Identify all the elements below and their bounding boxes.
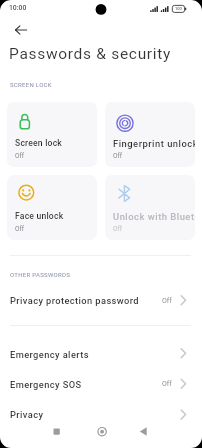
button[interactable]: Emergency SOS bbox=[0, 370, 202, 398]
button[interactable] bbox=[8, 20, 30, 38]
staticText: 100 bbox=[175, 6, 182, 11]
button[interactable] bbox=[130, 421, 160, 443]
button[interactable]: Fingerprint unlock bbox=[105, 102, 195, 167]
staticText: Passwords & security bbox=[9, 45, 172, 63]
staticText: Face unlock bbox=[15, 211, 97, 221]
button[interactable]: Emergency alerts bbox=[0, 340, 202, 368]
button[interactable]: Face unlock bbox=[7, 175, 97, 240]
button[interactable]: Unlock with Bluetooth device bbox=[105, 175, 195, 240]
staticText: Off bbox=[162, 297, 172, 305]
button[interactable]: Privacy bbox=[0, 400, 202, 429]
staticText: 10:00 bbox=[9, 4, 27, 12]
button[interactable] bbox=[87, 421, 117, 443]
button[interactable]: Privacy protection password bbox=[0, 288, 202, 313]
staticText: Fingerprint unlock bbox=[113, 138, 195, 149]
staticText: Off bbox=[113, 152, 122, 160]
staticText: Emergency SOS bbox=[10, 379, 82, 390]
staticText: OTHER PASSWORDS bbox=[10, 271, 71, 278]
staticText: Off bbox=[15, 225, 24, 233]
staticText: Privacy bbox=[10, 409, 44, 420]
staticText: Off bbox=[15, 152, 24, 160]
staticText: Emergency alerts bbox=[10, 349, 89, 360]
staticText: Unlock with Bluetooth device bbox=[113, 211, 195, 222]
button[interactable] bbox=[42, 421, 72, 443]
staticText: Screen lock bbox=[15, 138, 97, 148]
staticText: Privacy protection password bbox=[10, 295, 140, 306]
button[interactable]: Screen lock bbox=[7, 102, 97, 167]
staticText: Off bbox=[113, 225, 122, 233]
staticText: SCREEN LOCK bbox=[10, 81, 52, 88]
staticText: Off bbox=[162, 380, 172, 388]
